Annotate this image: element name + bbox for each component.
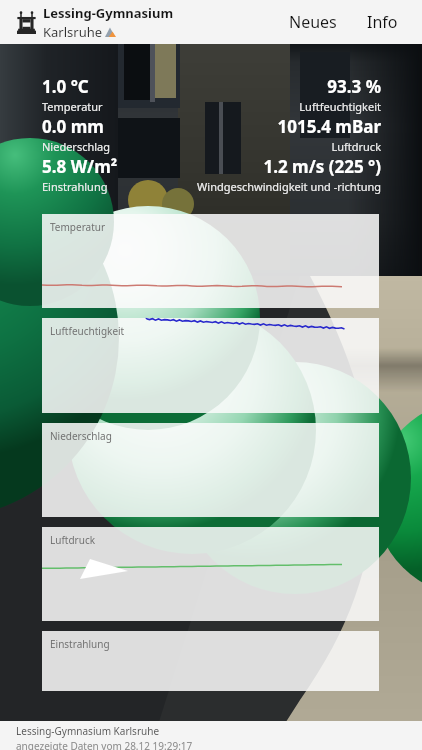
staticText: Temperatur bbox=[50, 220, 106, 234]
staticText: Luftfeuchtigkeit bbox=[50, 324, 125, 338]
staticText: 1015.4 mBar bbox=[277, 115, 381, 138]
staticText: Einstrahlung bbox=[42, 179, 108, 194]
staticText: Lessing-Gymnasium Karlsruhe bbox=[16, 724, 160, 738]
button[interactable]: Neues bbox=[283, 3, 343, 41]
staticText: Einstrahlung bbox=[50, 637, 110, 651]
button[interactable]: Einstrahlung bbox=[42, 631, 379, 691]
staticText: Luftfeuchtigkeit bbox=[299, 99, 381, 114]
staticText: Windgeschwindigkeit und -richtung bbox=[197, 179, 381, 194]
staticText: Luftdruck bbox=[331, 139, 381, 154]
staticText: Info bbox=[367, 11, 398, 33]
staticText: Temperatur bbox=[42, 99, 103, 114]
staticText: 0.0 mm bbox=[42, 115, 104, 138]
button[interactable]: Temperatur bbox=[42, 214, 379, 308]
staticText: Lessing-Gymnasium bbox=[43, 4, 174, 22]
staticText: Luftdruck bbox=[50, 533, 96, 547]
staticText: 1.0 °C bbox=[42, 75, 89, 98]
button[interactable]: Info bbox=[361, 3, 404, 41]
staticText: 93.3 % bbox=[327, 75, 381, 98]
button[interactable]: Luftdruck bbox=[42, 527, 379, 621]
staticText: Niederschlag bbox=[50, 429, 112, 443]
staticText: angezeigte Daten vom 28.12 19:29:17 bbox=[16, 739, 193, 750]
staticText: Neues bbox=[289, 11, 337, 33]
staticText: Karlsruhe bbox=[43, 23, 103, 41]
button[interactable]: Luftfeuchtigkeit bbox=[42, 318, 379, 413]
staticText: 1.2 m/s (225 °) bbox=[263, 155, 381, 178]
staticText: 5.8 W/m² bbox=[42, 155, 118, 178]
staticText: Niederschlag bbox=[42, 139, 111, 154]
button[interactable]: Niederschlag bbox=[42, 423, 379, 517]
